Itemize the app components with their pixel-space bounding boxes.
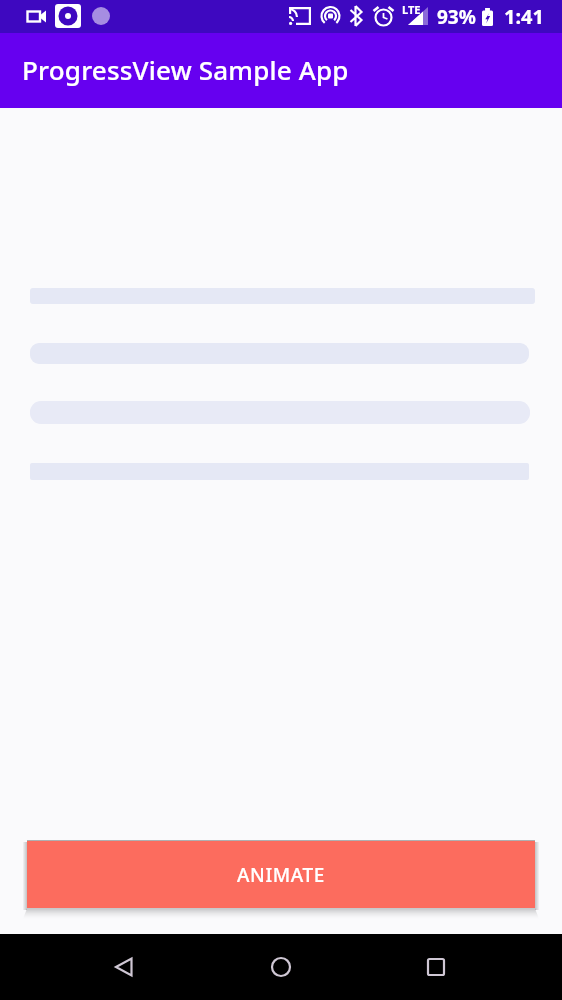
staticText: ProgressView Sample App: [22, 52, 349, 87]
button[interactable]: Back: [103, 945, 147, 989]
staticText: 93%: [437, 4, 476, 30]
staticText: 1:41: [504, 3, 544, 30]
button[interactable]: ANIMATE: [27, 841, 535, 908]
staticText: ANIMATE: [237, 862, 325, 888]
button[interactable]: Home: [259, 945, 303, 989]
button[interactable]: Recents: [414, 945, 458, 989]
staticText: LTE: [402, 2, 421, 17]
